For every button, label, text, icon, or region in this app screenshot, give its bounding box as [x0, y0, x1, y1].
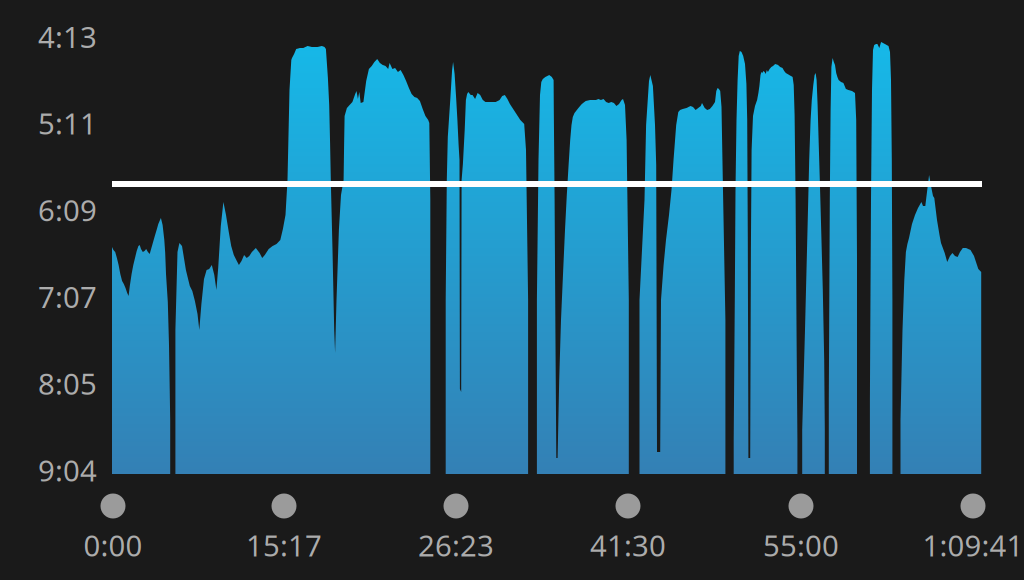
- staticText: 26:23: [418, 525, 494, 564]
- staticText: 0:00: [83, 525, 142, 564]
- staticText: 8:05: [38, 364, 97, 403]
- staticText: 9:04: [38, 450, 97, 489]
- staticText: 4:13: [38, 17, 97, 56]
- staticText: 55:00: [763, 525, 839, 564]
- staticText: 1:09:41: [922, 525, 1023, 564]
- staticText: 6:09: [38, 190, 97, 229]
- staticText: 7:07: [38, 277, 97, 316]
- staticText: 41:30: [590, 525, 666, 564]
- staticText: 15:17: [246, 525, 322, 564]
- staticText: 5:11: [38, 104, 97, 143]
